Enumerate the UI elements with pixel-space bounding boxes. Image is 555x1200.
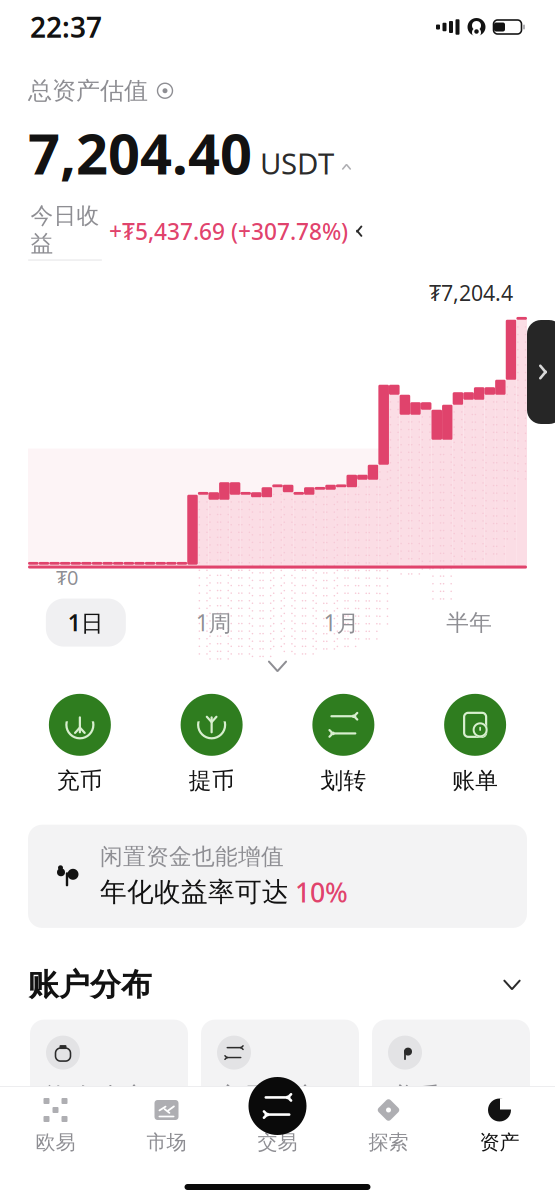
- staticText: 1月: [323, 607, 359, 638]
- button[interactable]: 交易账户: [201, 1020, 359, 1170]
- staticText: 账户分布: [28, 966, 152, 1004]
- staticText: 资产: [479, 1130, 519, 1155]
- button[interactable]: 1周: [150, 598, 277, 647]
- button[interactable]: 切换计价货币: [334, 163, 352, 174]
- staticText: 市场: [146, 1130, 186, 1155]
- staticText: 账单: [452, 767, 498, 795]
- staticText: 7,204.40: [28, 115, 252, 190]
- staticText: ₮0: [388, 1125, 420, 1162]
- button[interactable]: 半年: [405, 600, 533, 645]
- staticText: 资金账户: [46, 1082, 146, 1113]
- button[interactable]: 1月: [277, 598, 405, 647]
- staticText: USDT: [252, 143, 334, 182]
- button[interactable]: 资产: [444, 1087, 555, 1155]
- staticText: 划转: [320, 767, 366, 795]
- staticText: 22:37: [30, 8, 102, 46]
- staticText: 1周: [196, 607, 232, 638]
- button[interactable]: 今日收益: [28, 202, 363, 260]
- staticText: 闲置资金也能增值: [100, 843, 284, 870]
- button[interactable]: 市场: [111, 1087, 222, 1155]
- button[interactable]: 展开侧边栏: [527, 320, 555, 424]
- staticText: 半年: [446, 609, 492, 636]
- button[interactable]: 探索: [333, 1087, 444, 1155]
- button[interactable]: 资金账户: [30, 1020, 188, 1170]
- staticText: 年化收益率可达: [100, 876, 289, 909]
- staticText: ₮7,204.4: [429, 278, 513, 307]
- button[interactable]: 赚币: [372, 1020, 530, 1170]
- button[interactable]: 账单: [409, 690, 541, 799]
- staticText: 交易账户: [217, 1082, 317, 1113]
- staticText: 探索: [368, 1130, 408, 1155]
- staticText: ₮0.25: [46, 1125, 118, 1162]
- staticText: +₮5,437.69 (+307.78%): [109, 216, 348, 246]
- button[interactable]: 交易: [248, 1077, 306, 1135]
- button[interactable]: 闲置资金也能增值: [28, 825, 527, 928]
- staticText: 交易: [257, 1130, 297, 1155]
- staticText: ₮0: [56, 564, 78, 591]
- staticText: 充币: [57, 767, 103, 795]
- button[interactable]: 收起账户分布: [497, 974, 527, 996]
- staticText: ₮7,204.15: [217, 1125, 329, 1199]
- button[interactable]: 划转: [277, 690, 409, 799]
- staticText: 今日收益: [30, 202, 99, 257]
- button[interactable]: 充币: [14, 690, 146, 799]
- button[interactable]: 隐藏总资产估值: [28, 76, 174, 105]
- staticText: 提币: [189, 767, 235, 795]
- button[interactable]: 1日: [22, 598, 150, 647]
- staticText: 赚币: [388, 1082, 438, 1113]
- button[interactable]: 欧易: [0, 1087, 111, 1155]
- button[interactable]: 提币: [146, 690, 277, 799]
- staticText: 10%: [295, 874, 348, 910]
- staticText: 欧易: [35, 1130, 75, 1155]
- staticText: 1日: [68, 607, 104, 638]
- button[interactable]: 交易: [222, 1087, 333, 1155]
- staticText: 总资产估值: [28, 76, 148, 105]
- button[interactable]: 收起图表: [0, 651, 555, 682]
